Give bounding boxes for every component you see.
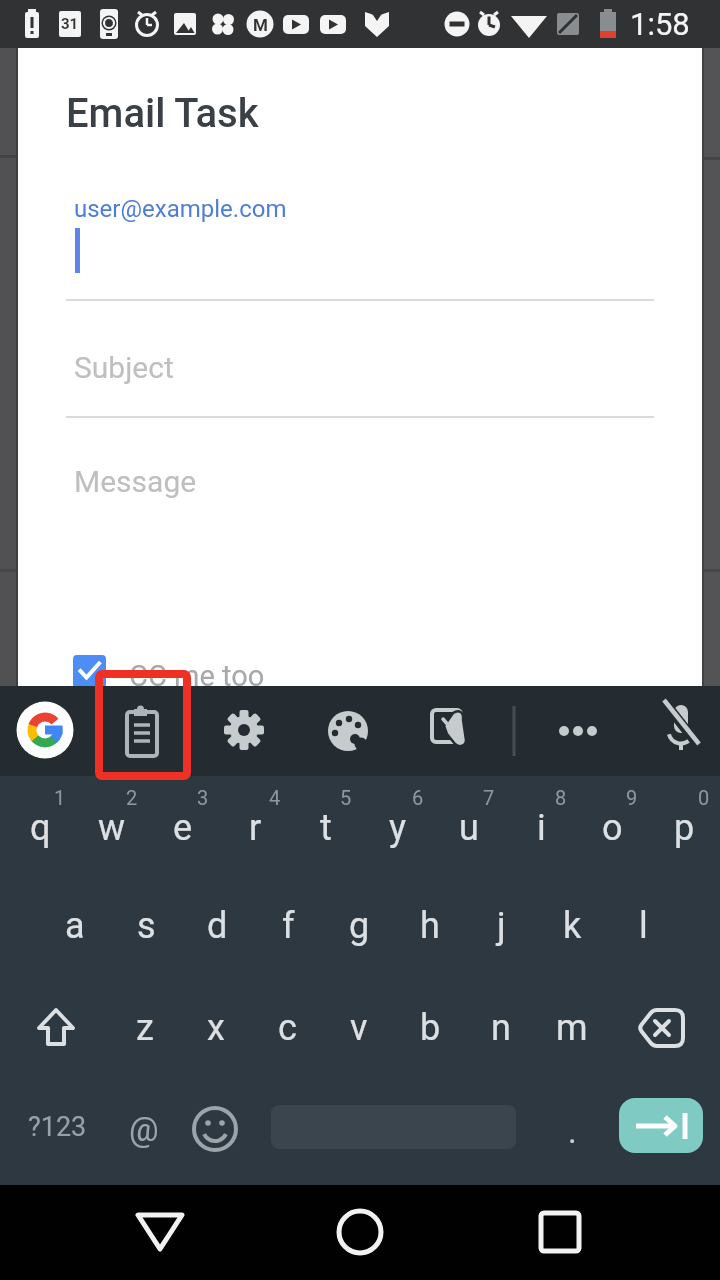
button[interactable]: j <box>466 877 536 975</box>
staticText: k <box>563 905 582 947</box>
staticText: . <box>568 1112 577 1151</box>
staticText: e <box>173 807 193 849</box>
staticText: z <box>136 1007 154 1049</box>
staticText: 7 <box>483 786 495 809</box>
staticText: a <box>65 905 85 947</box>
staticText: Message <box>74 464 197 499</box>
button[interactable] <box>313 691 383 771</box>
staticText: f <box>282 905 295 947</box>
staticText: j <box>497 905 506 947</box>
staticText: i <box>537 807 546 849</box>
button[interactable]: z <box>110 979 180 1077</box>
button[interactable]: Message <box>66 426 666 606</box>
button[interactable] <box>543 691 613 771</box>
staticText: c <box>278 1007 297 1049</box>
button[interactable]: y <box>363 779 433 877</box>
button[interactable]: k <box>537 877 607 975</box>
button[interactable]: CC me too <box>58 643 318 686</box>
staticText: o <box>602 807 623 849</box>
button[interactable]: . <box>542 1082 602 1180</box>
staticText: y <box>389 807 407 849</box>
button[interactable] <box>100 1185 220 1280</box>
button[interactable]: q <box>5 779 75 877</box>
staticText: 3 <box>197 786 209 809</box>
staticText: d <box>207 905 228 947</box>
staticText: 8 <box>555 786 567 809</box>
staticText: 0 <box>698 786 710 809</box>
staticText: 1 <box>54 786 66 809</box>
button[interactable] <box>16 979 98 1077</box>
button[interactable] <box>619 1098 703 1153</box>
button[interactable]: e <box>148 779 218 877</box>
button[interactable]: @ <box>109 1080 179 1178</box>
button[interactable] <box>646 691 716 771</box>
staticText: 2 <box>126 786 138 809</box>
button[interactable]: p <box>649 779 719 877</box>
staticText: u <box>459 807 479 849</box>
staticText: 5 <box>340 786 352 809</box>
staticText: user@example.com <box>74 195 287 223</box>
button[interactable]: w <box>77 779 147 877</box>
staticText: r <box>249 807 262 849</box>
button[interactable] <box>620 979 704 1077</box>
staticText: b <box>420 1007 441 1049</box>
button[interactable]: m <box>537 979 607 1077</box>
staticText: g <box>349 905 370 947</box>
staticText: n <box>491 1007 511 1049</box>
staticText: 31 <box>61 15 79 33</box>
staticText: x <box>207 1007 225 1049</box>
button[interactable] <box>16 701 74 759</box>
button[interactable] <box>300 1185 420 1280</box>
staticText: 4 <box>269 786 281 809</box>
staticText: s <box>137 905 156 947</box>
staticText: 6 <box>412 786 424 809</box>
button[interactable] <box>107 690 177 770</box>
staticText: Email Task <box>66 90 259 137</box>
staticText: p <box>674 807 695 849</box>
staticText: Subject <box>74 350 174 385</box>
button[interactable]: i <box>506 779 576 877</box>
button[interactable]: o <box>577 779 647 877</box>
button[interactable]: g <box>324 877 394 975</box>
button[interactable]: x <box>181 979 251 1077</box>
button[interactable]: u <box>434 779 504 877</box>
button[interactable]: h <box>395 877 465 975</box>
button[interactable]: f <box>253 877 323 975</box>
staticText: v <box>350 1007 368 1049</box>
staticText: m <box>556 1007 588 1049</box>
button[interactable]: c <box>252 979 322 1077</box>
button[interactable]: ?123 <box>12 1078 102 1176</box>
staticText: ?123 <box>28 1111 87 1143</box>
staticText: h <box>420 905 440 947</box>
button[interactable] <box>209 691 279 771</box>
button[interactable]: r <box>220 779 290 877</box>
staticText: 9 <box>626 786 638 809</box>
staticText: t <box>320 807 332 849</box>
button[interactable] <box>414 691 484 771</box>
staticText: w <box>98 807 126 849</box>
button[interactable]: b <box>395 979 465 1077</box>
staticText: CC me too <box>129 659 265 693</box>
button[interactable]: l <box>608 877 678 975</box>
button[interactable]: d <box>182 877 252 975</box>
button[interactable] <box>180 1078 250 1176</box>
button[interactable]: v <box>324 979 394 1077</box>
button[interactable]: n <box>466 979 536 1077</box>
button[interactable]: Subject <box>66 310 666 415</box>
button[interactable] <box>500 1185 620 1280</box>
button[interactable]: t <box>291 779 361 877</box>
button[interactable]: a <box>40 877 110 975</box>
staticText: q <box>30 807 51 849</box>
staticText: 1:58 <box>630 6 690 42</box>
staticText: l <box>639 905 648 947</box>
button[interactable]: s <box>111 877 181 975</box>
staticText: M <box>253 15 268 35</box>
staticText: @ <box>129 1110 159 1149</box>
button[interactable]: user@example.com <box>66 183 666 301</box>
